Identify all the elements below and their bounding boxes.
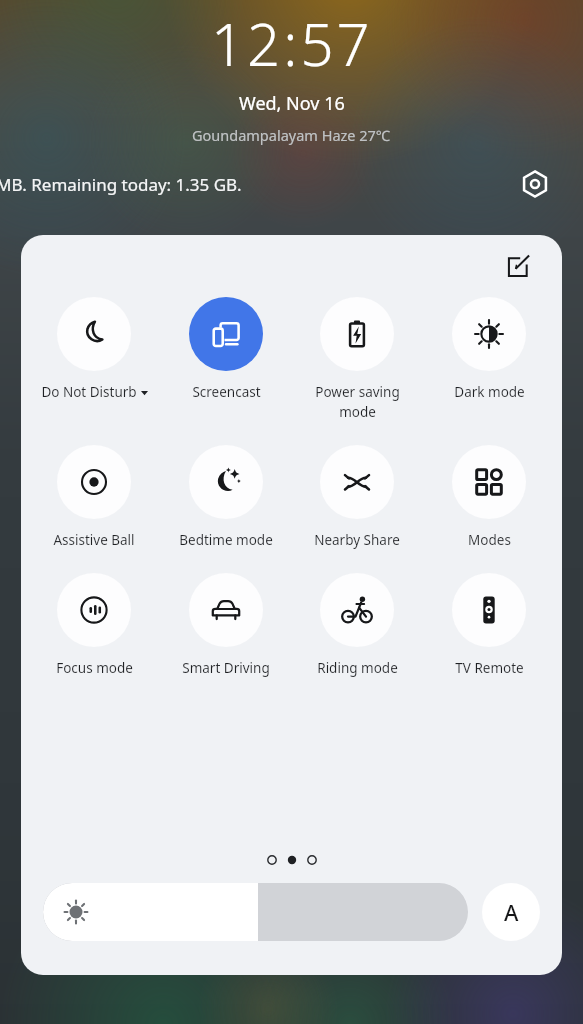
staticText: MB. Remaining today: 1.35 GB. <box>0 173 242 196</box>
button[interactable]: Brightness <box>43 883 468 941</box>
staticText: TV Remote <box>455 659 524 677</box>
staticText: Goundampalayam Haze 27℃ <box>192 125 391 145</box>
staticText: Modes <box>468 531 511 549</box>
button[interactable]: Settings <box>517 166 553 202</box>
button[interactable]: A <box>482 883 540 941</box>
staticText: Screencast <box>192 383 261 401</box>
staticText: Nearby Share <box>314 531 400 549</box>
button[interactable]: Smart Driving <box>164 573 288 677</box>
button[interactable]: Focus mode <box>32 573 156 677</box>
staticText: Power saving mode <box>315 383 400 421</box>
staticText: 12:57 <box>211 4 373 83</box>
button[interactable]: Dark mode <box>427 297 551 401</box>
staticText: Dark mode <box>454 383 525 401</box>
button[interactable]: Modes <box>427 445 551 549</box>
staticText: Riding mode <box>317 659 398 677</box>
staticText: Smart Driving <box>182 659 270 677</box>
staticText: Do Not Disturb <box>41 383 137 401</box>
staticText: Wed, Nov 16 <box>239 91 345 116</box>
staticText: Bedtime mode <box>179 531 273 549</box>
staticText: A <box>504 897 519 927</box>
button[interactable]: Bedtime mode <box>164 445 288 549</box>
staticText: Focus mode <box>56 659 133 677</box>
button[interactable]: Riding mode <box>295 573 419 677</box>
button[interactable]: Edit quick settings <box>502 249 536 283</box>
button[interactable]: TV Remote <box>427 573 551 677</box>
button[interactable]: Do Not Disturb <box>32 297 156 401</box>
button[interactable]: Power saving mode <box>295 297 419 421</box>
button[interactable]: Screencast <box>164 297 288 401</box>
button[interactable]: Assistive Ball <box>32 445 156 549</box>
button[interactable]: Nearby Share <box>295 445 419 549</box>
staticText: Assistive Ball <box>53 531 135 549</box>
